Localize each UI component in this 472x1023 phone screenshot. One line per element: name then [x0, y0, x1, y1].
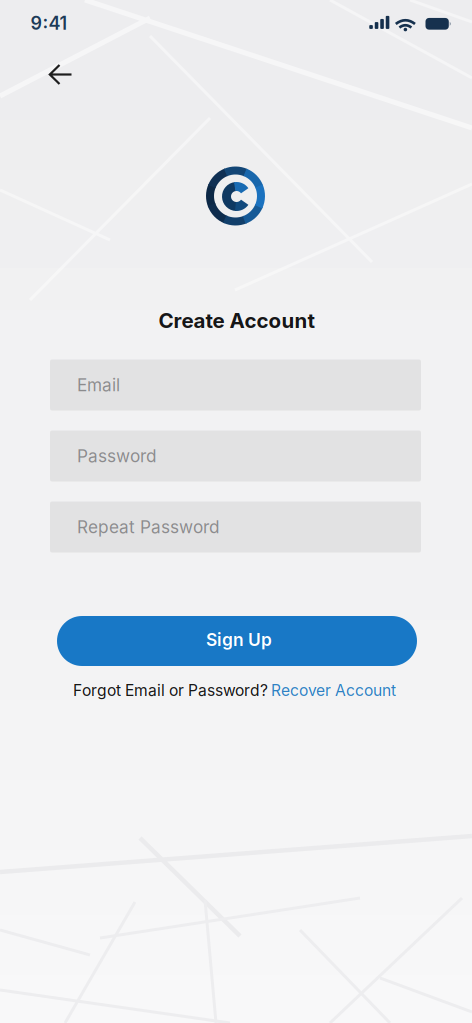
- staticText: 9:41: [31, 12, 68, 34]
- staticText: Password: [77, 446, 157, 466]
- button[interactable]: Repeat Password: [50, 501, 421, 552]
- button[interactable]: Email: [50, 359, 421, 410]
- staticText: Email: [77, 375, 120, 395]
- staticText: Sign Up: [206, 629, 272, 650]
- button[interactable]: Recover Account: [271, 681, 396, 700]
- staticText: Repeat Password: [77, 517, 220, 537]
- button[interactable]: Sign Up: [57, 616, 417, 666]
- button[interactable]: Password: [50, 430, 421, 481]
- staticText: Recover Account: [271, 681, 396, 700]
- staticText: Create Account: [158, 308, 315, 333]
- staticText: Forgot Email or Password?: [73, 681, 268, 700]
- button[interactable]: Back: [39, 53, 82, 96]
